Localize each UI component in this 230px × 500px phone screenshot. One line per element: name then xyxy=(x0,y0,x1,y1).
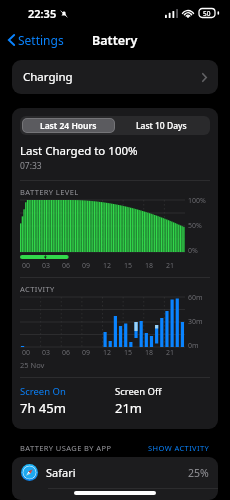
staticText: 21m xyxy=(115,399,143,417)
staticText: Settings xyxy=(18,32,64,48)
button[interactable]: Last 10 Days xyxy=(115,118,208,133)
staticText: 18 xyxy=(145,261,154,271)
staticText: 12 xyxy=(103,348,112,358)
staticText: 03 xyxy=(42,348,51,358)
staticText: 25% xyxy=(188,466,209,480)
staticText: 21 xyxy=(166,348,175,358)
staticText: Last 10 Days xyxy=(136,120,187,132)
staticText: Last Charged to 100% xyxy=(20,143,138,159)
staticText: Last 24 Hours xyxy=(40,120,97,132)
staticText: 21 xyxy=(166,261,175,271)
staticText: 00 xyxy=(22,261,31,271)
staticText: Screen Off xyxy=(115,385,162,398)
button[interactable]: Safari xyxy=(12,457,218,488)
staticText: 15 xyxy=(124,261,133,271)
staticText: 00 xyxy=(22,348,31,358)
staticText: 0% xyxy=(188,246,198,256)
staticText: 7h 45m xyxy=(20,399,66,417)
staticText: ACTIVITY xyxy=(20,284,55,294)
staticText: 0m xyxy=(188,341,199,351)
staticText: 09 xyxy=(82,261,91,271)
button[interactable]: Reddit xyxy=(12,489,218,500)
staticText: Safari xyxy=(46,465,76,480)
button[interactable]: Charging xyxy=(12,60,218,94)
button[interactable]: SHOW ACTIVITY xyxy=(148,443,210,453)
staticText: 50% xyxy=(188,221,202,231)
staticText: Battery xyxy=(92,32,138,49)
staticText: Charging xyxy=(23,69,73,85)
button[interactable]: Settings xyxy=(0,28,72,52)
staticText: 09 xyxy=(82,348,91,358)
staticText: BATTERY LEVEL xyxy=(20,187,79,197)
staticText: 03 xyxy=(42,261,51,271)
button[interactable]: Last 24 Hours xyxy=(22,118,115,133)
staticText: Screen On xyxy=(20,385,66,398)
staticText: 22:35 xyxy=(28,6,57,21)
staticText: BATTERY USAGE BY APP xyxy=(20,443,112,453)
staticText: 06 xyxy=(62,348,71,358)
staticText: 50 xyxy=(203,9,211,18)
staticText: 15 xyxy=(124,348,133,358)
staticText: 18 xyxy=(145,348,154,358)
staticText: SHOW ACTIVITY xyxy=(148,443,210,453)
staticText: 100% xyxy=(188,196,206,206)
staticText: 30m xyxy=(188,317,203,327)
staticText: 12 xyxy=(103,261,112,271)
staticText: 06 xyxy=(62,261,71,271)
staticText: 25 Nov xyxy=(20,360,45,370)
staticText: 07:33 xyxy=(20,160,42,172)
staticText: 60m xyxy=(188,293,203,303)
